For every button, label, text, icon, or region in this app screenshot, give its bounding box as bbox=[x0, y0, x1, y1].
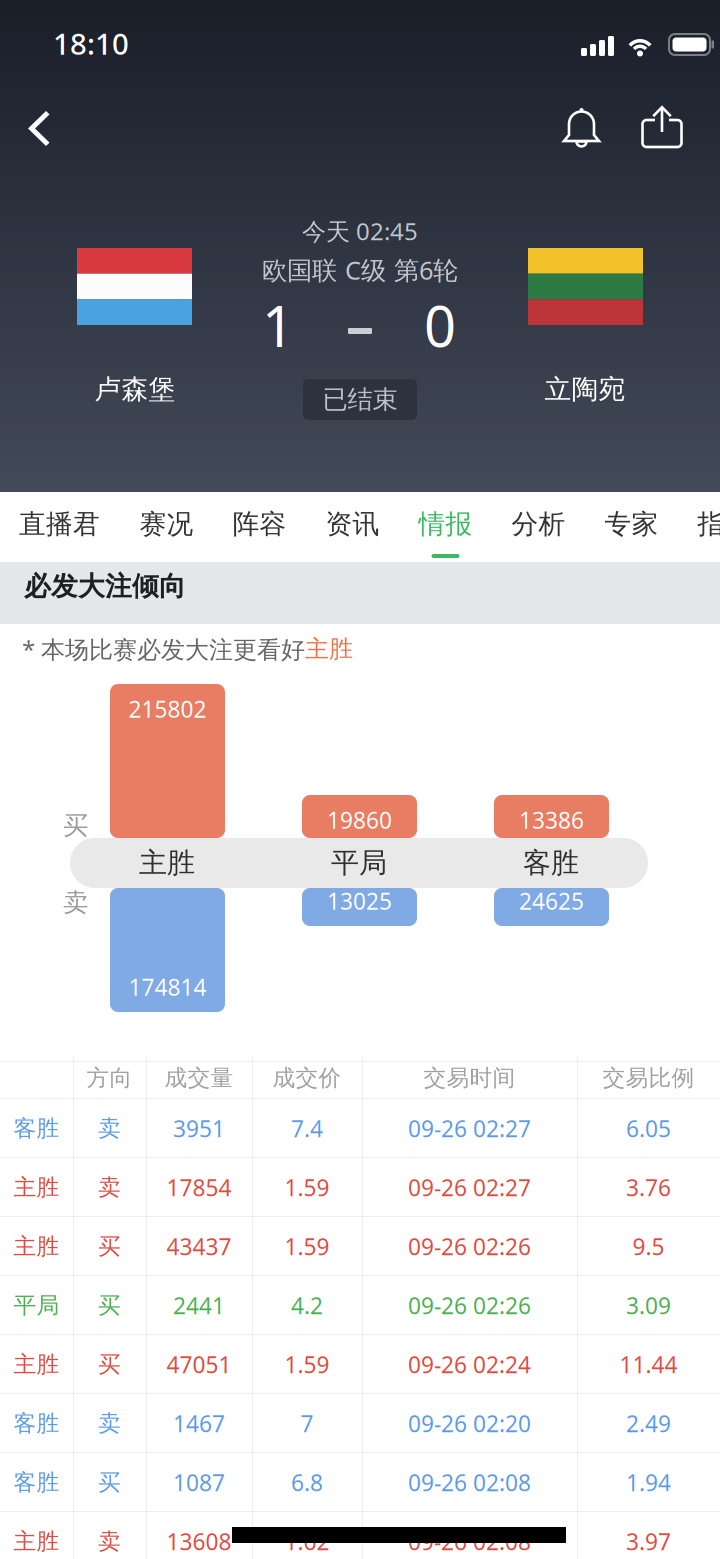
staticText: 买 bbox=[98, 1469, 121, 1496]
staticText: 客胜 bbox=[523, 846, 579, 880]
staticText: 卢森堡 bbox=[94, 373, 175, 406]
staticText: 4.2 bbox=[291, 1290, 323, 1320]
staticText: 09-26 02:27 bbox=[408, 1172, 531, 1202]
staticText: 13386 bbox=[519, 805, 584, 835]
staticText: 0 bbox=[424, 288, 456, 362]
staticText: 3951 bbox=[173, 1113, 225, 1143]
staticText: 174814 bbox=[128, 972, 206, 1002]
staticText: 1 bbox=[262, 288, 294, 362]
staticText: 指 bbox=[697, 508, 720, 540]
staticText: 1087 bbox=[173, 1467, 225, 1497]
staticText: 主胜 bbox=[13, 1351, 59, 1378]
staticText: 1.94 bbox=[626, 1467, 671, 1497]
staticText: 09-26 02:20 bbox=[408, 1408, 531, 1438]
staticText: 卖 bbox=[98, 1115, 121, 1142]
staticText: 17854 bbox=[166, 1172, 231, 1202]
staticText: 09-26 02:26 bbox=[408, 1290, 531, 1320]
staticText: 3.97 bbox=[626, 1526, 671, 1556]
staticText: 客胜 bbox=[13, 1410, 59, 1437]
staticText: 买 bbox=[98, 1233, 121, 1260]
staticText: 18:10 bbox=[53, 24, 129, 63]
staticText: 客胜 bbox=[13, 1115, 59, 1142]
staticText: 直播君 bbox=[19, 508, 100, 540]
staticText: 买 bbox=[98, 1351, 121, 1378]
staticText: 欧国联 C级 第6轮 bbox=[262, 253, 458, 287]
button[interactable]: 直播君 bbox=[20, 492, 99, 562]
staticText: 主胜 bbox=[13, 1174, 59, 1201]
staticText: 必发大注倾向 bbox=[24, 570, 186, 603]
staticText: 卖 bbox=[98, 1410, 121, 1437]
staticText: 1.59 bbox=[284, 1172, 329, 1202]
staticText: 主胜 bbox=[139, 846, 195, 880]
staticText: 6.8 bbox=[291, 1467, 323, 1497]
staticText: 9.5 bbox=[632, 1231, 664, 1261]
staticText: 1467 bbox=[173, 1408, 225, 1438]
staticText: 主胜 bbox=[305, 634, 353, 664]
staticText: 已结束 bbox=[322, 384, 397, 415]
staticText: 6.05 bbox=[626, 1113, 671, 1143]
staticText: 交易时间 bbox=[423, 1064, 515, 1092]
staticText: 09-26 02:08 bbox=[408, 1467, 531, 1497]
staticText: 方向 bbox=[86, 1064, 132, 1092]
staticText: 2441 bbox=[173, 1290, 225, 1320]
staticText: 1.62 bbox=[284, 1526, 329, 1556]
staticText: 卖 bbox=[98, 1528, 121, 1555]
staticText: 情报 bbox=[418, 508, 472, 540]
staticText: 43437 bbox=[166, 1231, 231, 1261]
staticText: 09-26 02:26 bbox=[408, 1231, 531, 1261]
staticText: 买 bbox=[98, 1292, 121, 1319]
staticText: 平局 bbox=[13, 1292, 59, 1319]
staticText: 13608 bbox=[166, 1526, 231, 1556]
staticText: 分析 bbox=[511, 508, 565, 540]
button[interactable]: 指 bbox=[698, 492, 720, 562]
staticText: 赛况 bbox=[139, 508, 193, 540]
staticText: 2.49 bbox=[626, 1408, 671, 1438]
staticText: 成交价 bbox=[272, 1064, 341, 1092]
staticText: 卖 bbox=[98, 1174, 121, 1201]
staticText: 今天 02:45 bbox=[302, 215, 418, 247]
staticText: 09-26 02:27 bbox=[408, 1113, 531, 1143]
staticText: 买 bbox=[63, 810, 88, 841]
button[interactable]: Back bbox=[10, 93, 70, 165]
button[interactable]: Notifications bbox=[547, 89, 617, 165]
button[interactable]: Share bbox=[625, 89, 699, 164]
staticText: 11.44 bbox=[619, 1349, 677, 1379]
staticText: 09-26 02:08 bbox=[408, 1526, 531, 1556]
staticText: 3.76 bbox=[626, 1172, 671, 1202]
button[interactable]: 阵容 bbox=[233, 492, 286, 562]
staticText: 19860 bbox=[327, 805, 392, 835]
button[interactable]: 情报 bbox=[419, 492, 472, 562]
staticText: * 本场比赛必发大注更看好 bbox=[22, 633, 305, 665]
staticText: 24625 bbox=[519, 886, 584, 916]
staticText: 成交量 bbox=[164, 1064, 233, 1092]
button[interactable]: 专家 bbox=[605, 492, 658, 562]
button[interactable]: 赛况 bbox=[140, 492, 193, 562]
staticText: 专家 bbox=[604, 508, 658, 540]
staticText: 客胜 bbox=[13, 1469, 59, 1496]
staticText: 7 bbox=[300, 1408, 313, 1438]
staticText: 主胜 bbox=[13, 1528, 59, 1555]
staticText: 13025 bbox=[327, 886, 392, 916]
staticText: 主胜 bbox=[13, 1233, 59, 1260]
staticText: 215802 bbox=[128, 694, 206, 724]
button[interactable]: 资讯 bbox=[326, 492, 379, 562]
staticText: 阵容 bbox=[232, 508, 286, 540]
staticText: 7.4 bbox=[291, 1113, 323, 1143]
staticText: 1.59 bbox=[284, 1349, 329, 1379]
staticText: 交易比例 bbox=[602, 1064, 694, 1092]
staticText: 资讯 bbox=[325, 508, 379, 540]
staticText: 卖 bbox=[63, 887, 88, 918]
staticText: 3.09 bbox=[626, 1290, 671, 1320]
staticText: 平局 bbox=[331, 846, 387, 880]
staticText: 立陶宛 bbox=[544, 373, 625, 406]
staticText: 47051 bbox=[166, 1349, 231, 1379]
button[interactable]: 分析 bbox=[512, 492, 565, 562]
staticText: 09-26 02:24 bbox=[408, 1349, 531, 1379]
staticText: 1.59 bbox=[284, 1231, 329, 1261]
